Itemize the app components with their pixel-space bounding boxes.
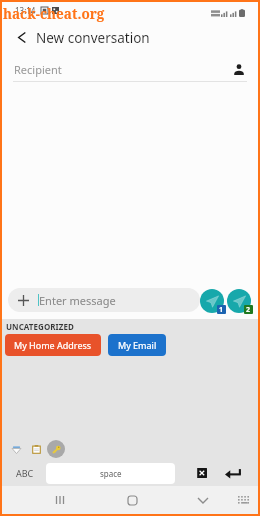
staticText: UNCATEGORIZED: [6, 321, 74, 332]
staticText: Enter message: [39, 293, 116, 308]
button[interactable]: space: [46, 463, 175, 484]
button[interactable]: Home: [118, 486, 146, 514]
button[interactable]: Choose contact: [226, 56, 252, 82]
button[interactable]: Backspace: [188, 463, 212, 483]
staticText: 1: [219, 305, 224, 314]
staticText: 13:14: [15, 5, 36, 16]
button[interactable]: Passwords: [47, 440, 65, 458]
staticText: hack-cheat.org: [3, 5, 105, 23]
button[interactable]: Send with account 1: [200, 289, 224, 313]
button[interactable]: Enter message: [8, 288, 200, 312]
button[interactable]: Send with account 2: [227, 289, 251, 313]
button[interactable]: Switch keyboard: [230, 486, 258, 514]
staticText: Recipient: [14, 62, 62, 77]
button[interactable]: Clipboard: [27, 440, 46, 459]
button[interactable]: Back: [2, 24, 38, 50]
staticText: My Home Address: [14, 339, 92, 351]
button[interactable]: Recent apps: [46, 486, 74, 514]
staticText: space: [100, 468, 122, 479]
staticText: 2: [246, 305, 251, 314]
button[interactable]: Hide keyboard: [189, 486, 217, 514]
button[interactable]: My Home Address: [5, 334, 101, 356]
staticText: New conversation: [36, 29, 150, 47]
button[interactable]: Recipient: [2, 56, 258, 82]
button[interactable]: My Email: [108, 334, 166, 356]
button[interactable]: Email address: [7, 440, 26, 459]
staticText: ABC: [16, 467, 34, 479]
staticText: My Email: [118, 339, 157, 351]
button[interactable]: Enter: [221, 463, 245, 483]
